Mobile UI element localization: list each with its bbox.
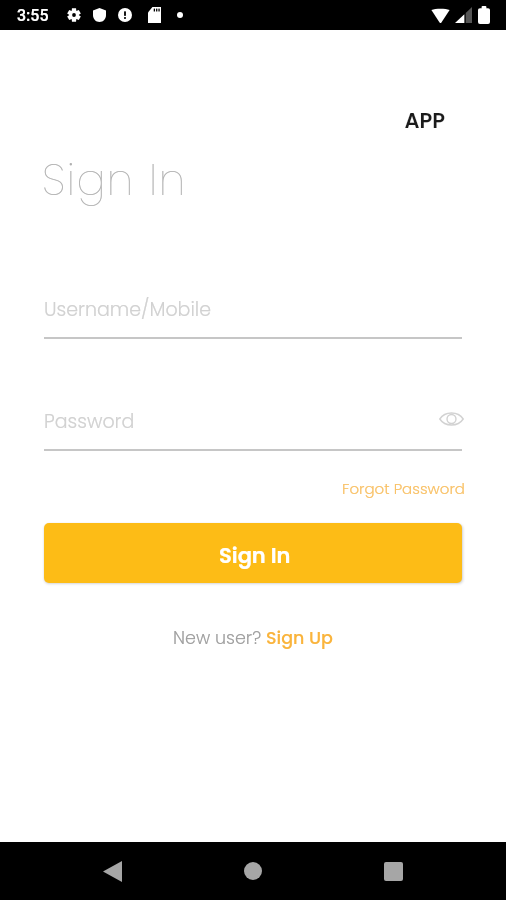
button[interactable]: Sign In xyxy=(44,523,462,583)
button[interactable]: Show password xyxy=(433,401,469,437)
button[interactable]: Back xyxy=(76,842,148,900)
button[interactable]: Recent apps xyxy=(357,842,429,900)
staticText: Forgot Password xyxy=(342,478,465,499)
button[interactable]: Home xyxy=(217,842,289,900)
staticText: New user? xyxy=(173,626,266,651)
staticText: APP xyxy=(0,106,445,135)
staticText: Sign In xyxy=(42,150,187,210)
button[interactable]: Sign Up xyxy=(266,626,333,651)
staticText: Password xyxy=(44,408,135,435)
button[interactable]: Forgot Password xyxy=(342,478,506,499)
staticText: 3:55 xyxy=(17,6,49,25)
staticText: Sign In xyxy=(219,541,291,570)
staticText: Username/Mobile xyxy=(44,296,211,323)
